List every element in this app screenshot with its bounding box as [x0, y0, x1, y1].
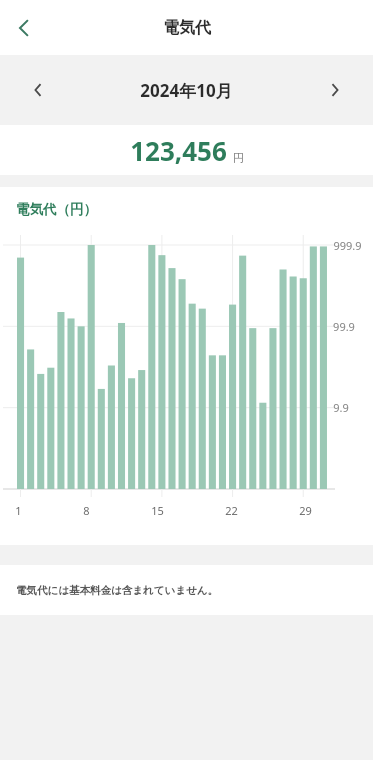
- staticText: 2024年10月: [140, 79, 233, 102]
- staticText: 99.9: [333, 319, 355, 334]
- staticText: 電気代（円）: [16, 201, 97, 218]
- button[interactable]: 前の月: [14, 66, 62, 114]
- button[interactable]: 次の月: [311, 66, 359, 114]
- staticText: 999.9: [333, 238, 362, 253]
- staticText: 電気代には基本料金は含まれていません。: [16, 584, 218, 597]
- staticText: 1: [15, 503, 22, 518]
- staticText: 9.9: [333, 400, 349, 415]
- staticText: 15: [151, 503, 164, 518]
- staticText: 123,456: [130, 133, 227, 168]
- button[interactable]: 戻る: [0, 4, 48, 52]
- staticText: 電気代: [163, 18, 211, 38]
- staticText: 29: [299, 503, 312, 518]
- staticText: 22: [225, 503, 238, 518]
- staticText: 8: [83, 503, 90, 518]
- staticText: 円: [233, 151, 244, 165]
